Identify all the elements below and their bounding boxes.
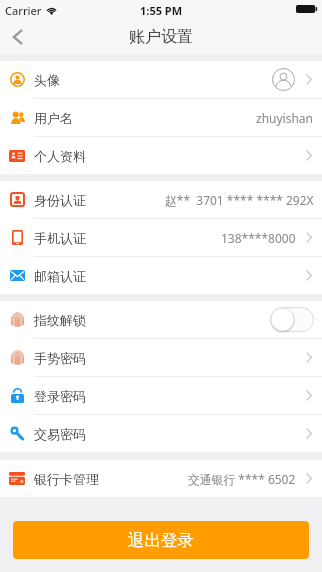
staticText: 账户设置 bbox=[129, 27, 193, 47]
button[interactable]: 用户名 bbox=[0, 99, 322, 136]
staticText: 赵** 3701 **** **** 292X bbox=[165, 192, 314, 208]
button[interactable]: 指纹解锁 bbox=[0, 301, 322, 338]
staticText: 头像 bbox=[34, 72, 60, 88]
button[interactable]: Back bbox=[0, 20, 36, 54]
staticText: zhuyishan bbox=[256, 110, 314, 126]
button[interactable]: 手势密码 bbox=[0, 339, 322, 376]
button[interactable]: 个人资料 bbox=[0, 137, 322, 174]
button[interactable]: 退出登录 bbox=[13, 521, 309, 559]
staticText: 交通银行 **** 6502 bbox=[188, 471, 296, 487]
staticText: 个人资料 bbox=[34, 148, 86, 164]
staticText: 用户名 bbox=[34, 110, 73, 126]
button[interactable]: 头像 bbox=[0, 61, 322, 98]
staticText: 138****8000 bbox=[221, 230, 296, 246]
staticText: 银行卡管理 bbox=[34, 471, 99, 487]
staticText: 手势密码 bbox=[34, 350, 86, 366]
button[interactable]: 身份认证 bbox=[0, 181, 322, 218]
staticText: 身份认证 bbox=[34, 192, 86, 208]
button[interactable]: 登录密码 bbox=[0, 377, 322, 414]
staticText: 1:55 PM bbox=[140, 3, 183, 18]
button[interactable]: 交易密码 bbox=[0, 415, 322, 452]
button[interactable]: 手机认证 bbox=[0, 219, 322, 256]
staticText: Carrier bbox=[5, 3, 42, 18]
button[interactable]: Fingerprint unlock bbox=[270, 307, 314, 332]
staticText: 邮箱认证 bbox=[34, 268, 86, 284]
button[interactable]: 银行卡管理 bbox=[0, 460, 322, 497]
staticText: 指纹解锁 bbox=[34, 312, 86, 328]
button[interactable]: 邮箱认证 bbox=[0, 257, 322, 294]
staticText: 手机认证 bbox=[34, 230, 86, 246]
staticText: 交易密码 bbox=[34, 426, 86, 442]
staticText: 退出登录 bbox=[128, 530, 194, 551]
staticText: 登录密码 bbox=[34, 388, 86, 404]
